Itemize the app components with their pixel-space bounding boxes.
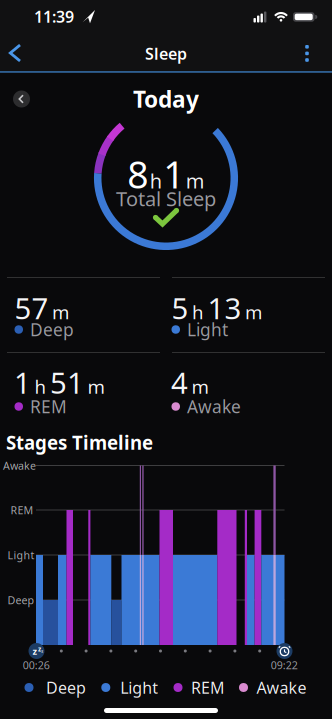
staticText: m [191, 374, 208, 399]
staticText: 09:22 [271, 658, 298, 672]
staticText: REM [30, 395, 67, 418]
staticText: Sleep [145, 43, 187, 64]
staticText: 51 [50, 363, 84, 402]
staticText: z [32, 645, 37, 657]
staticText: 11:39 [34, 6, 74, 27]
staticText: Deep [7, 593, 34, 607]
staticText: Light [120, 677, 158, 698]
button[interactable] [2, 39, 28, 66]
staticText: 5 [171, 288, 188, 327]
staticText: h [150, 167, 162, 194]
staticText: m [245, 300, 262, 324]
staticText: h [34, 374, 46, 399]
button[interactable] [295, 40, 319, 67]
staticText: m [87, 374, 104, 399]
staticText: Total Sleep [116, 185, 216, 212]
staticText: Awake [3, 458, 36, 473]
staticText: 00:26 [23, 658, 50, 672]
staticText: Light [7, 548, 34, 562]
staticText: Stages Timeline [6, 430, 153, 455]
staticText: 57 [14, 288, 48, 327]
staticText: Awake [256, 677, 306, 698]
staticText: Awake [187, 395, 241, 418]
staticText: z [41, 648, 43, 654]
staticText: Deep [30, 318, 74, 341]
staticText: 13 [207, 288, 241, 327]
button[interactable] [13, 90, 30, 107]
staticText: 8 [127, 149, 148, 199]
staticText: 1 [14, 363, 31, 402]
staticText: 4 [171, 363, 188, 402]
staticText: 1 [163, 149, 184, 199]
staticText: REM [10, 503, 33, 517]
staticText: h [192, 300, 204, 324]
staticText: Light [187, 318, 228, 341]
staticText: Today [133, 84, 199, 114]
staticText: Deep [46, 677, 86, 698]
staticText: z [38, 644, 41, 653]
staticText: m [186, 167, 205, 194]
staticText: m [52, 300, 69, 324]
staticText: REM [191, 677, 225, 698]
